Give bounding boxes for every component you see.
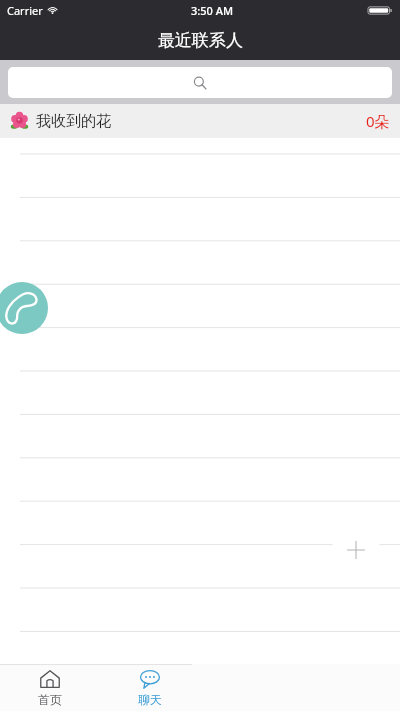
staticText: Carrier	[7, 3, 43, 18]
button[interactable]: 首页	[0, 664, 100, 711]
staticText: 聊天	[138, 692, 162, 707]
staticText: 首页	[38, 692, 62, 707]
button[interactable]: Call	[0, 282, 48, 334]
staticText: 0朵	[366, 111, 390, 131]
button[interactable]: 我收到的花	[0, 104, 400, 138]
staticText: 最近联系人	[158, 30, 243, 51]
staticText: 3:50 AM	[191, 3, 234, 18]
staticText: 我收到的花	[36, 112, 111, 131]
button[interactable]: Search	[8, 67, 392, 98]
button[interactable]: Add	[332, 526, 380, 574]
button[interactable]: 聊天	[100, 664, 200, 711]
